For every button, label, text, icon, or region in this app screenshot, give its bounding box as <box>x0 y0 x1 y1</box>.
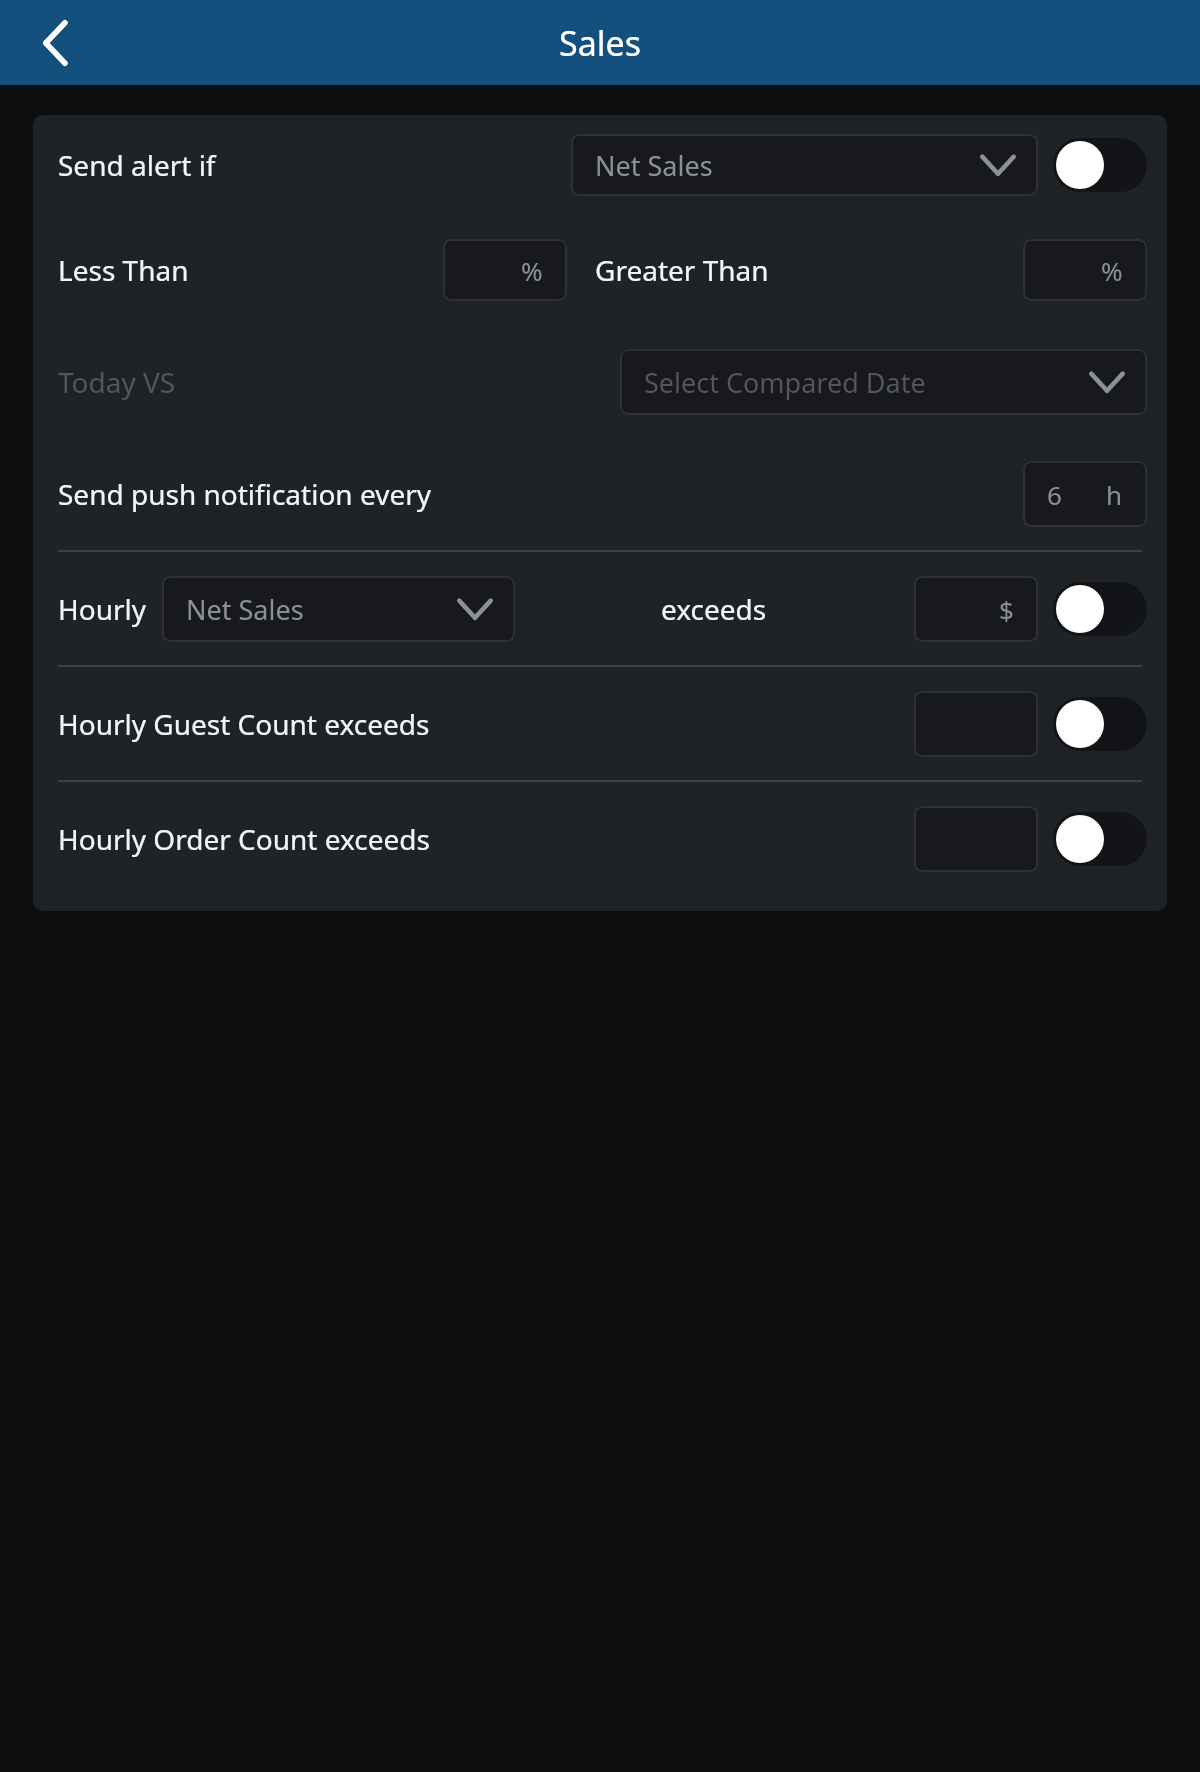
button[interactable]: 6 <box>1023 461 1147 527</box>
staticText: exceeds <box>661 590 767 628</box>
staticText: Net Sales <box>186 591 304 628</box>
staticText: % <box>521 253 543 288</box>
button[interactable]: $ <box>914 576 1038 642</box>
button[interactable]: Back <box>14 1 98 85</box>
staticText: Sales <box>559 20 641 66</box>
button[interactable]: Net Sales <box>571 134 1038 196</box>
staticText: Send push notification every <box>58 475 432 513</box>
staticText: % <box>1101 253 1123 288</box>
staticText: Hourly Guest Count exceeds <box>58 705 430 743</box>
staticText: Today VS <box>58 363 176 401</box>
button[interactable]: Select Compared Date <box>620 349 1147 415</box>
staticText: 6 <box>1047 477 1062 512</box>
staticText: Hourly Order Count exceeds <box>58 820 430 858</box>
button[interactable]: % <box>443 239 567 301</box>
staticText: Select Compared Date <box>644 364 926 401</box>
staticText: Send alert if <box>58 146 216 184</box>
staticText: Hourly <box>58 590 147 628</box>
button[interactable] <box>914 691 1038 757</box>
staticText: $ <box>999 592 1014 627</box>
button[interactable]: Toggle <box>1053 812 1147 866</box>
button[interactable]: % <box>1023 239 1147 301</box>
staticText: h <box>1106 477 1123 512</box>
button[interactable]: Net Sales <box>162 576 515 642</box>
staticText: Less Than <box>58 251 189 289</box>
button[interactable]: Toggle <box>1053 138 1147 192</box>
button[interactable] <box>914 806 1038 872</box>
staticText: Greater Than <box>595 251 769 289</box>
button[interactable]: Toggle <box>1053 582 1147 636</box>
staticText: Net Sales <box>595 147 713 184</box>
button[interactable]: Toggle <box>1053 697 1147 751</box>
